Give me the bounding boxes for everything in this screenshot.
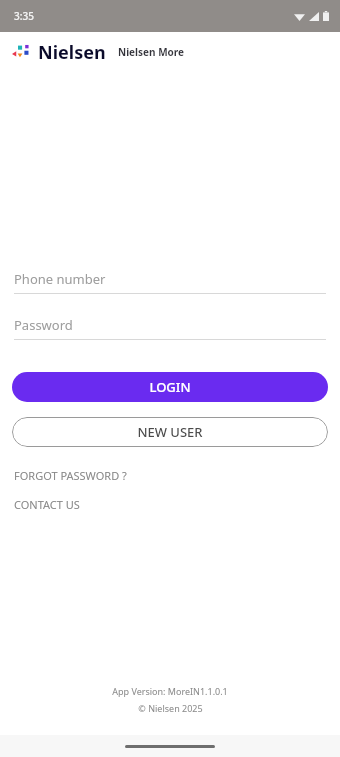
button[interactable]: FORGOT PASSWORD ? <box>14 468 326 483</box>
button[interactable]: LOGIN <box>12 372 328 402</box>
staticText: Nielsen <box>38 40 106 65</box>
staticText: App Version: MoreIN1.1.0.1 <box>112 685 228 697</box>
staticText: Nielsen More <box>118 45 185 59</box>
staticText: LOGIN <box>149 378 191 396</box>
button[interactable]: NEW USER <box>12 417 328 447</box>
staticText: CONTACT US <box>14 497 80 512</box>
staticText: © Nielsen 2025 <box>138 702 203 714</box>
button[interactable]: CONTACT US <box>14 497 326 512</box>
button[interactable]: Password <box>14 314 326 340</box>
button[interactable]: Phone number <box>14 268 326 294</box>
staticText: Phone number <box>14 270 106 288</box>
staticText: NEW USER <box>137 423 203 441</box>
staticText: FORGOT PASSWORD ? <box>14 468 127 483</box>
staticText: Password <box>14 316 73 334</box>
staticText: 3:35 <box>14 9 34 23</box>
